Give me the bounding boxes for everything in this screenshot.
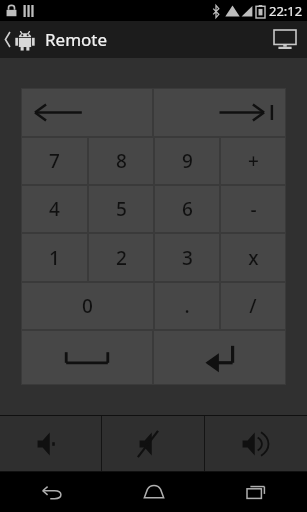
button[interactable]: Enter <box>154 331 285 384</box>
button[interactable]: + <box>221 138 285 184</box>
button[interactable]: 1 <box>22 234 87 281</box>
staticText: / <box>249 293 257 319</box>
button[interactable]: Display <box>263 21 307 58</box>
staticText: 3 <box>182 245 193 271</box>
button[interactable]: Recents <box>205 472 307 512</box>
staticText: 5 <box>116 196 127 222</box>
button[interactable]: Tab <box>154 89 285 136</box>
staticText: - <box>250 196 257 222</box>
staticText: x <box>248 245 259 271</box>
staticText: 0 <box>82 293 93 319</box>
button[interactable]: Space <box>22 331 152 384</box>
button[interactable]: / <box>221 283 285 329</box>
button[interactable]: 0 <box>22 283 153 329</box>
button[interactable]: x <box>221 234 285 281</box>
button[interactable]: 2 <box>89 234 153 281</box>
button[interactable]: 6 <box>155 186 219 232</box>
staticText: 7 <box>49 148 60 174</box>
button[interactable]: Home <box>103 472 205 512</box>
button[interactable]: Backspace <box>22 89 152 136</box>
staticText: 4 <box>49 196 60 222</box>
button[interactable]: 8 <box>89 138 153 184</box>
button[interactable]: 5 <box>89 186 153 232</box>
button[interactable]: Remote <box>0 24 116 55</box>
staticText: 1 <box>49 245 60 271</box>
button[interactable]: Back <box>0 472 103 512</box>
button[interactable]: Mute <box>102 416 204 471</box>
button[interactable]: Volume down <box>0 416 101 471</box>
button[interactable]: 7 <box>22 138 87 184</box>
staticText: . <box>184 293 190 319</box>
staticText: 8 <box>116 148 127 174</box>
button[interactable]: Volume up <box>205 416 307 471</box>
button[interactable]: 9 <box>155 138 219 184</box>
staticText: 2 <box>116 245 127 271</box>
staticText: 6 <box>182 196 193 222</box>
staticText: Remote <box>45 28 108 51</box>
button[interactable]: 3 <box>155 234 219 281</box>
button[interactable]: 4 <box>22 186 87 232</box>
staticText: 22:12 <box>269 2 303 20</box>
staticText: 9 <box>182 148 193 174</box>
staticText: + <box>248 148 259 174</box>
